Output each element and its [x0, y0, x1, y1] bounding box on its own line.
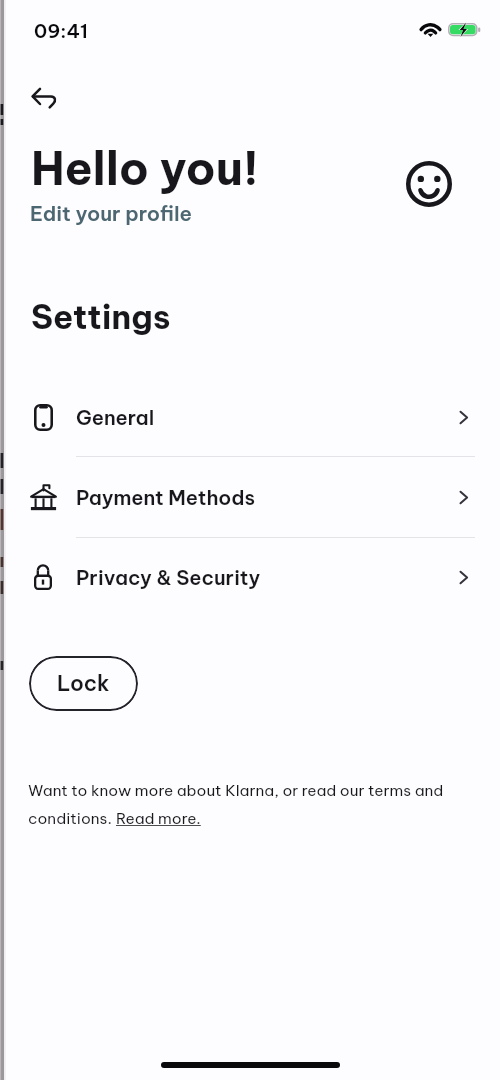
- button[interactable]: Payment Methods: [0, 458, 500, 536]
- button[interactable]: Privacy & Security: [0, 538, 500, 616]
- staticText: Want to know more about Klarna, or read …: [28, 781, 444, 800]
- button[interactable]: General: [0, 378, 500, 456]
- button[interactable]: Profile: [401, 156, 457, 212]
- staticText: Hello you!: [31, 139, 259, 197]
- button[interactable]: Edit your profile: [30, 201, 192, 227]
- staticText: Lock: [57, 670, 110, 697]
- button[interactable]: Lock: [29, 656, 138, 711]
- staticText: Payment Methods: [76, 485, 256, 510]
- button[interactable]: Back: [20, 74, 68, 122]
- staticText: Settings: [31, 296, 171, 338]
- staticText: conditions.: [28, 809, 116, 828]
- button[interactable]: Read more.: [116, 809, 201, 828]
- staticText: 09:41: [34, 19, 88, 43]
- staticText: General: [76, 405, 155, 430]
- staticText: Privacy & Security: [76, 565, 261, 590]
